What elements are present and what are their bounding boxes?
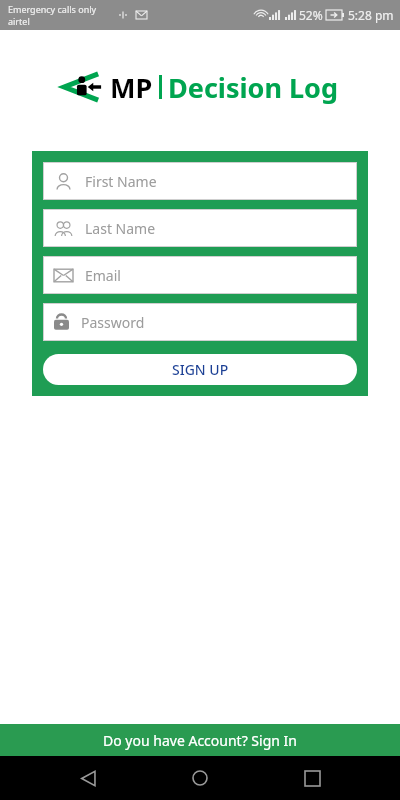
button[interactable]: Do you have Account? Sign In: [0, 724, 400, 756]
staticText: MP: [110, 69, 153, 106]
button[interactable]: Email: [43, 256, 357, 294]
button[interactable]: Back: [64, 756, 112, 800]
button[interactable]: SIGN UP: [43, 354, 357, 385]
staticText: Emergency calls only: [8, 3, 97, 15]
staticText: 5:28 pm: [348, 7, 394, 23]
staticText: First Name: [85, 172, 157, 191]
staticText: Do you have Account? Sign In: [103, 731, 297, 750]
button[interactable]: Last Name: [43, 209, 357, 247]
staticText: airtel: [8, 15, 30, 27]
button[interactable]: Home: [176, 756, 224, 800]
staticText: SIGN UP: [172, 360, 229, 379]
staticText: Email: [85, 266, 121, 285]
button[interactable]: Password: [43, 303, 357, 341]
staticText: Decision Log: [168, 69, 338, 106]
staticText: 52%: [299, 7, 323, 23]
button[interactable]: Recent apps: [288, 756, 336, 800]
staticText: Last Name: [85, 219, 156, 238]
staticText: Password: [81, 313, 145, 332]
button[interactable]: First Name: [43, 162, 357, 200]
